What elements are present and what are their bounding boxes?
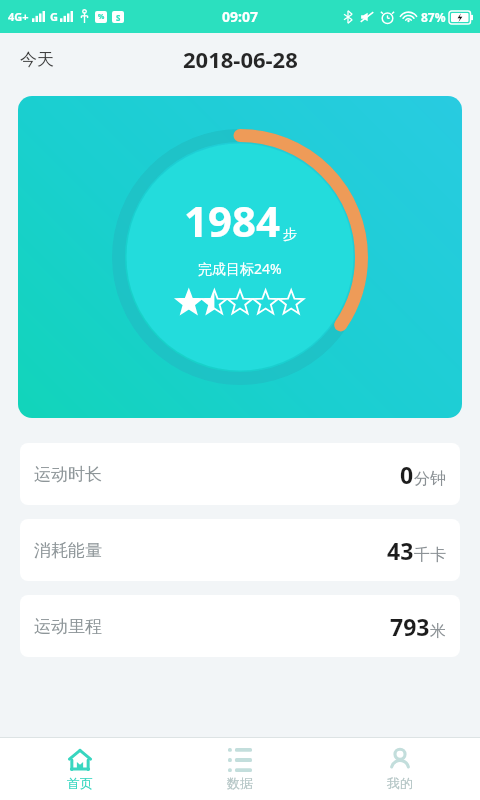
staticText: 运动里程 — [34, 616, 102, 637]
staticText: 1984 — [184, 192, 281, 249]
staticText: 4G+ — [8, 9, 29, 24]
staticText: 2018-06-28 — [183, 44, 298, 74]
button[interactable]: 数据 — [160, 738, 320, 800]
staticText: % — [98, 12, 105, 22]
staticText: S — [116, 12, 121, 23]
staticText: 分钟 — [414, 469, 446, 489]
button[interactable]: 运动里程 — [20, 595, 460, 657]
staticText: 千卡 — [414, 545, 446, 565]
staticText: 43 — [387, 535, 414, 566]
staticText: 数据 — [227, 775, 253, 791]
staticText: 首页 — [67, 775, 93, 791]
staticText: 今天 — [20, 49, 54, 70]
button[interactable]: 运动时长 — [20, 443, 460, 505]
staticText: 87% — [421, 9, 446, 25]
staticText: 米 — [430, 621, 446, 641]
button[interactable]: 今天 — [14, 45, 60, 74]
staticText: 09:07 — [222, 7, 258, 26]
staticText: 消耗能量 — [34, 540, 102, 561]
staticText: 完成目标24% — [198, 259, 282, 278]
staticText: 0 — [400, 459, 414, 490]
staticText: 运动时长 — [34, 464, 102, 485]
staticText: 793 — [390, 611, 430, 642]
staticText: G — [50, 9, 58, 24]
staticText: 我的 — [387, 775, 413, 791]
button[interactable]: 1984 — [18, 96, 462, 418]
staticText: 步 — [283, 226, 297, 244]
button[interactable]: 消耗能量 — [20, 519, 460, 581]
button[interactable]: 首页 — [0, 738, 160, 800]
button[interactable]: 我的 — [320, 738, 480, 800]
